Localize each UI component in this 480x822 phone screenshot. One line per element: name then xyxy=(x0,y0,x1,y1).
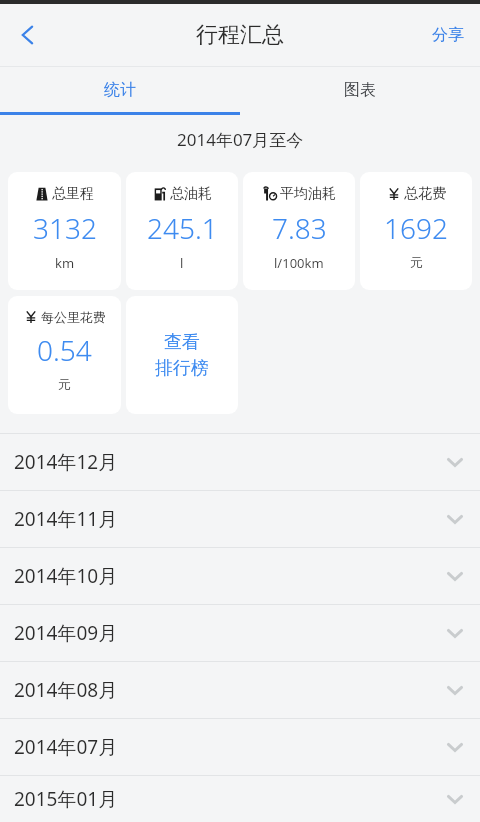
staticText: 2015年01月 xyxy=(14,786,118,812)
staticText: 2014年12月 xyxy=(14,449,118,475)
staticText: 行程汇总 xyxy=(196,21,284,49)
staticText: 分享 xyxy=(432,25,464,45)
staticText: 元 xyxy=(410,254,423,270)
button[interactable]: 2014年10月 xyxy=(0,548,480,604)
staticText: 总油耗 xyxy=(170,185,212,203)
button[interactable]: 总花费 xyxy=(360,172,472,290)
staticText: l xyxy=(180,254,184,272)
staticText: l/100km xyxy=(274,254,324,272)
staticText: 7.83 xyxy=(272,209,327,247)
staticText: 总里程 xyxy=(52,185,94,203)
staticText: 总花费 xyxy=(404,185,446,203)
button[interactable]: 统计 xyxy=(0,67,240,112)
staticText: 统计 xyxy=(104,80,136,100)
staticText: 1692 xyxy=(384,209,448,247)
staticText: 2014年07月 xyxy=(14,734,118,760)
button[interactable]: 查看 排行榜 xyxy=(126,296,238,414)
button[interactable]: 2014年12月 xyxy=(0,434,480,490)
button[interactable]: 2014年07月 xyxy=(0,719,480,775)
staticText: 元 xyxy=(58,376,71,392)
staticText: 3132 xyxy=(33,209,97,247)
staticText: 245.1 xyxy=(147,209,218,247)
button[interactable]: 分享 xyxy=(416,7,480,63)
staticText: km xyxy=(55,254,75,272)
staticText: 2014年10月 xyxy=(14,563,118,589)
staticText: 平均油耗 xyxy=(280,185,336,203)
button[interactable]: 图表 xyxy=(240,67,480,112)
staticText: 2014年11月 xyxy=(14,506,118,532)
button[interactable]: 2014年08月 xyxy=(0,662,480,718)
staticText: 0.54 xyxy=(37,331,92,369)
staticText: 每公里花费 xyxy=(41,309,106,325)
button[interactable]: 总里程 xyxy=(8,172,121,290)
staticText: 图表 xyxy=(344,80,376,100)
button[interactable]: 2015年01月 xyxy=(0,776,480,822)
button[interactable]: 2014年11月 xyxy=(0,491,480,547)
button[interactable]: 每公里花费 xyxy=(8,296,121,414)
staticText: 2014年09月 xyxy=(14,620,118,646)
staticText: 2014年08月 xyxy=(14,677,118,703)
button[interactable]: 平均油耗 xyxy=(243,172,355,290)
staticText: 2014年07月至今 xyxy=(177,128,304,151)
staticText: 查看 排行榜 xyxy=(155,331,209,380)
button[interactable]: 总油耗 xyxy=(126,172,238,290)
button[interactable]: 2014年09月 xyxy=(0,605,480,661)
button[interactable]: Back xyxy=(0,7,56,63)
